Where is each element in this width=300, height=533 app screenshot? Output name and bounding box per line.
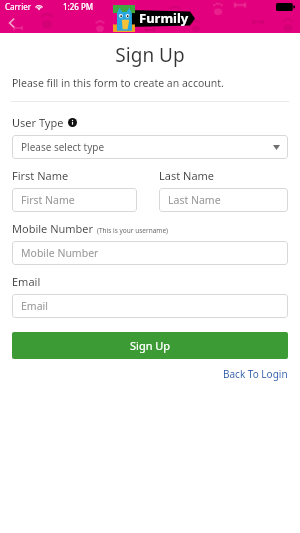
staticText: Last Name — [168, 193, 221, 207]
staticText: Email — [21, 299, 48, 313]
staticText: Please fill in this form to create an ac… — [12, 76, 224, 90]
staticText: User Type — [12, 115, 64, 130]
button[interactable]: Back — [3, 14, 21, 32]
staticText: Carrier — [5, 1, 32, 12]
staticText: Furmily — [139, 9, 189, 27]
staticText: Last Name — [159, 168, 215, 183]
button[interactable]: Back To Login — [223, 367, 288, 381]
staticText: Please select type — [21, 140, 105, 154]
staticText: Email — [12, 274, 41, 289]
staticText: Mobile Number — [21, 246, 99, 260]
staticText: 1:26 PM — [63, 1, 94, 12]
staticText: Mobile Number — [12, 221, 94, 236]
staticText: First Name — [21, 193, 75, 207]
button[interactable]: Last Name — [159, 188, 288, 212]
button[interactable]: Sign Up — [12, 332, 288, 359]
staticText: First Name — [12, 168, 69, 183]
button[interactable]: Email — [12, 294, 288, 318]
staticText: Sign Up — [0, 42, 300, 68]
button[interactable]: Mobile Number — [12, 241, 288, 265]
button[interactable]: First Name — [12, 188, 137, 212]
staticText: Sign Up — [130, 338, 171, 353]
staticText: Back To Login — [223, 367, 288, 381]
button[interactable]: Please select type — [12, 135, 288, 159]
staticText: (This is your username) — [97, 226, 169, 235]
